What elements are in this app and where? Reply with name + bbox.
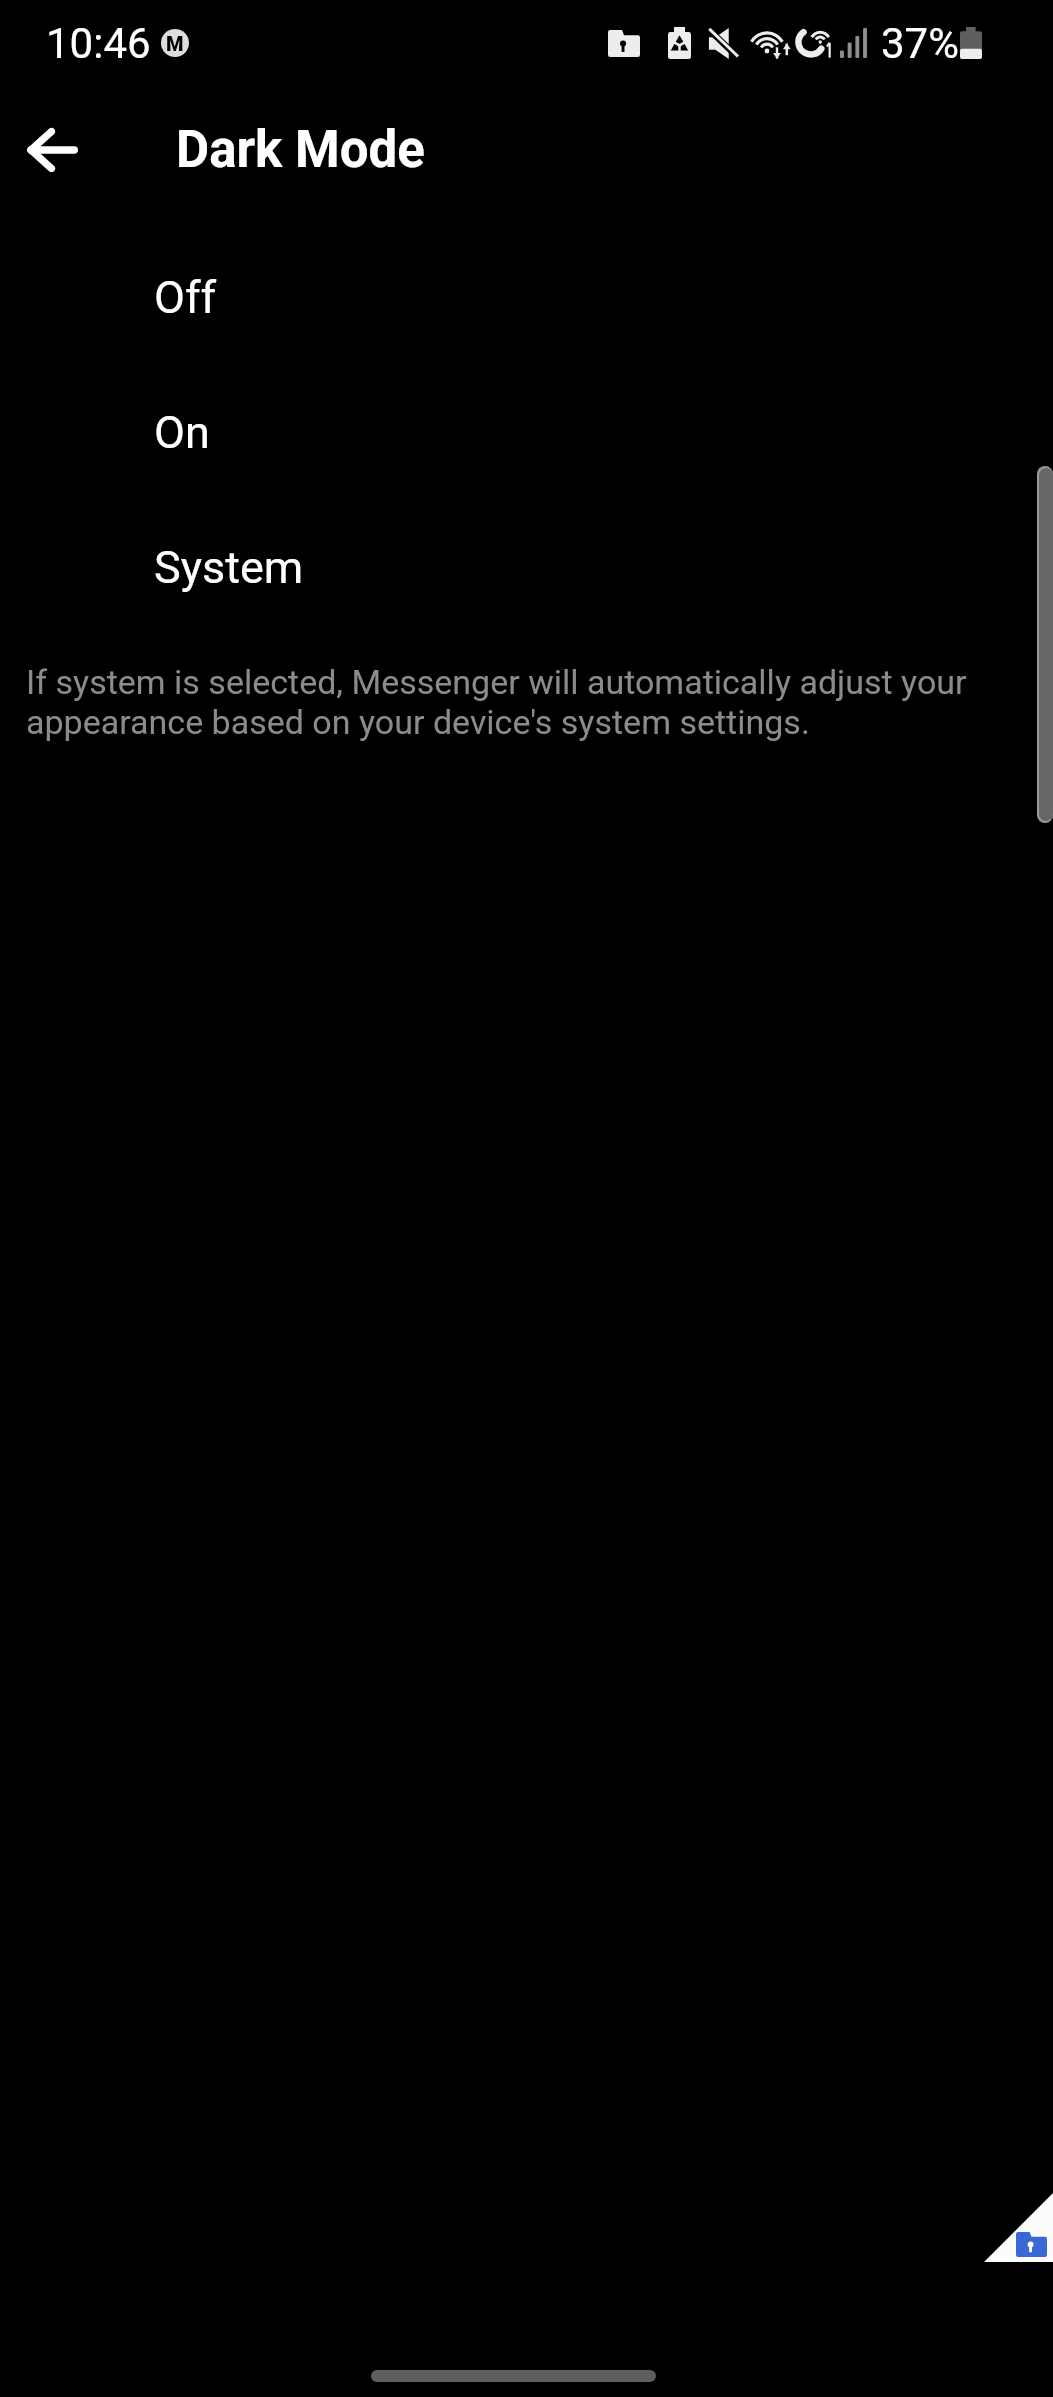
button[interactable]: Off	[0, 230, 1053, 365]
button[interactable]: Back	[0, 98, 104, 202]
staticText: On	[154, 406, 210, 459]
staticText: Off	[154, 271, 217, 324]
staticText: 37%	[881, 19, 959, 68]
staticText: If system is selected, Messenger will au…	[26, 662, 986, 742]
staticText: 10:46	[46, 19, 151, 68]
staticText: System	[154, 541, 304, 594]
staticText: M	[166, 32, 184, 55]
button[interactable]: System	[0, 500, 1053, 635]
button[interactable]: On	[0, 365, 1053, 500]
staticText: Dark Mode	[176, 120, 425, 180]
